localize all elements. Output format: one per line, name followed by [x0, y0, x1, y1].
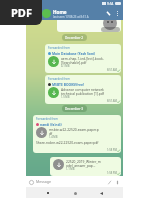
staticText: 1:58 PM — [107, 171, 117, 175]
staticText: 8:51 AM — [107, 99, 117, 103]
staticText: Home — [53, 9, 67, 15]
staticText: 8:51 AM — [107, 68, 117, 72]
staticText: December 2 — [65, 36, 84, 40]
button[interactable]: Forwarded from — [45, 75, 121, 104]
staticText: Forwarded from — [48, 77, 70, 81]
button[interactable]: 22520_2019_Winter_m — [50, 157, 121, 176]
button[interactable]: Home — [71, 189, 79, 197]
button[interactable]: Call — [104, 9, 113, 18]
staticText: MSBTE BOOKS[free] — [52, 82, 84, 86]
staticText: technical publication [1].pdf — [61, 91, 104, 95]
staticText: 4.1 MB — [61, 64, 70, 68]
button[interactable]: December 3 — [62, 105, 87, 112]
staticText: odel_answer_pap... — [66, 163, 96, 167]
staticText: last seen 17:08:23 at 8:51 A — [53, 15, 89, 19]
staticText: Advance computer network — [61, 87, 104, 91]
staticText: PDF — [11, 5, 32, 20]
button[interactable]: Emoji — [28, 179, 34, 185]
button[interactable]: Recent apps — [44, 189, 52, 197]
staticText: Forwarded from — [36, 117, 58, 121]
staticText: df — [49, 131, 53, 135]
staticText: Share-nobre-w22-22520-exam-paper.pdf — [36, 140, 99, 144]
button[interactable]: Back — [97, 189, 105, 197]
staticText: [Searchable].pdf — [61, 60, 87, 64]
button[interactable]: More options — [113, 9, 122, 18]
staticText: nandi (fa'ndi) — [40, 122, 62, 126]
staticText: 1.1 MB — [66, 167, 75, 171]
staticText: Main Database (Yash Soni) — [52, 51, 96, 55]
staticText: 9:54 — [107, 2, 114, 6]
button[interactable]: December 2 — [62, 34, 87, 41]
staticText: Message — [36, 179, 51, 184]
button[interactable] — [57, 17, 121, 32]
staticText: December 3 — [65, 107, 84, 111]
staticText: Forwarded from — [48, 46, 70, 50]
button[interactable]: Forwarded from — [33, 115, 121, 153]
button[interactable]: Forwarded from — [45, 44, 121, 73]
staticText: 1:58 PM — [107, 148, 117, 152]
staticText: 1.5 MB — [61, 95, 70, 99]
button[interactable]: Voice message — [114, 179, 120, 185]
button[interactable]: Attach — [106, 179, 112, 185]
staticText: aem-chap-1-ied-[lect]-book- — [61, 56, 104, 60]
staticText: msbte-w22-22520-exam-paper.p — [49, 127, 99, 131]
staticText: 1.4 MB — [49, 135, 58, 139]
staticText: 22520_2019_Winter_m — [66, 159, 101, 163]
